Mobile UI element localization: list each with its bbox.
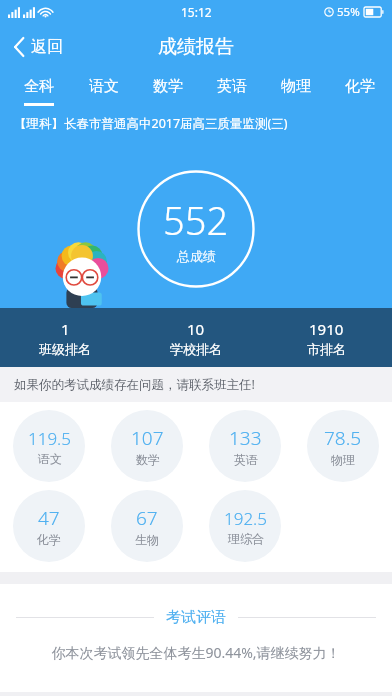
staticText: 【理科】长春市普通高中2017届高三质量监测(三) [14,115,288,132]
button[interactable]: 全科 [6,70,71,110]
button[interactable]: 107 [111,410,183,482]
staticText: 成绩报告 [158,35,234,59]
staticText: 133 [229,425,262,451]
staticText: 化学 [345,77,375,96]
button[interactable]: 119.5 [13,410,85,482]
button[interactable]: 192.5 [209,490,281,562]
button[interactable]: 化学 [328,70,392,110]
staticText: 化学 [37,532,61,547]
staticText: 1910 [309,319,344,339]
staticText: 全科 [24,77,54,96]
staticText: 学校排名 [170,341,222,357]
button[interactable]: 返回 [0,29,77,65]
staticText: 语文 [89,77,119,96]
staticText: 552 [163,194,229,246]
button[interactable]: 133 [209,410,281,482]
staticText: 返回 [31,37,63,57]
staticText: 55% [337,4,360,20]
staticText: 如果你的考试成绩存在问题，请联系班主任! [14,376,255,393]
staticText: 理综合 [228,531,264,546]
button[interactable]: 物理 [264,70,328,110]
button[interactable]: 1 [0,308,130,367]
staticText: 10 [187,319,205,339]
button[interactable]: 语文 [71,70,136,110]
staticText: 物理 [281,77,311,96]
staticText: 47 [38,505,60,531]
staticText: 考试评语 [166,608,226,627]
button[interactable]: 1910 [261,308,392,367]
button[interactable]: 数学 [136,70,200,110]
staticText: 你本次考试领先全体考生90.44%,请继续努力！ [51,643,341,662]
staticText: 78.5 [324,425,362,451]
staticText: 生物 [135,532,159,547]
staticText: 119.5 [28,427,71,450]
button[interactable]: 英语 [200,70,264,110]
staticText: 英语 [234,452,258,467]
staticText: 15:12 [181,4,212,20]
button[interactable]: 47 [13,490,85,562]
staticText: 数学 [136,452,160,467]
staticText: 班级排名 [39,341,91,357]
staticText: 市排名 [307,341,346,357]
staticText: 数学 [153,77,183,96]
staticText: 总成绩 [177,248,216,264]
staticText: 107 [131,425,164,451]
button[interactable]: 67 [111,490,183,562]
staticText: 1 [61,319,70,339]
staticText: 67 [136,505,158,531]
staticText: 语文 [38,451,62,466]
button[interactable]: 78.5 [307,410,379,482]
staticText: 物理 [331,452,355,467]
staticText: 192.5 [224,507,267,530]
staticText: 英语 [217,77,247,96]
button[interactable]: 10 [130,308,261,367]
